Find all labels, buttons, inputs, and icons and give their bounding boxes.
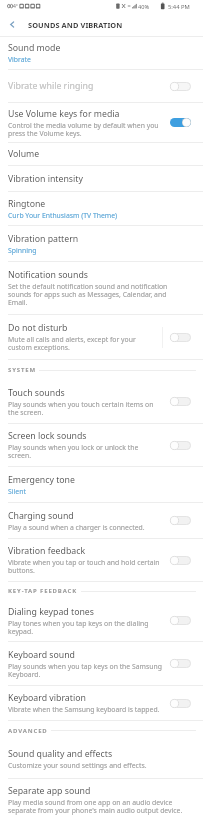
- staticText: Spinning: [8, 246, 37, 255]
- staticText: Sound quality and effects: [8, 748, 113, 760]
- button[interactable]: Toggle Keyboard vibration: [170, 699, 191, 708]
- button[interactable]: Screen lock sounds: [0, 424, 203, 466]
- button[interactable]: Emergency tone: [0, 467, 203, 502]
- staticText: Sound mode: [8, 42, 61, 54]
- staticText: Vibration feedback: [8, 545, 86, 557]
- staticText: Play tones when you tap keys on the dial…: [8, 619, 163, 636]
- button[interactable]: Toggle Vibration feedback: [170, 556, 191, 565]
- button[interactable]: Ringtone: [0, 192, 203, 225]
- staticText: Do not disturb: [8, 322, 68, 334]
- button[interactable]: Back: [0, 13, 24, 36]
- button[interactable]: Charging sound: [0, 503, 203, 538]
- staticText: Curb Your Enthusiasm (TV Theme): [8, 211, 118, 220]
- staticText: Vibrate: [8, 55, 31, 64]
- button[interactable]: Volume: [0, 143, 203, 165]
- button[interactable]: Vibration pattern: [0, 226, 203, 261]
- staticText: Vibration intensity: [8, 173, 83, 185]
- button[interactable]: Keyboard sound: [0, 642, 203, 685]
- button[interactable]: Toggle Use Volume keys for media: [170, 118, 191, 127]
- button[interactable]: Notification sounds: [0, 262, 203, 314]
- staticText: KEY-TAP FEEDBACK: [8, 587, 78, 595]
- staticText: Play sounds when you tap keys on the Sam…: [8, 662, 163, 679]
- staticText: Set the default notification sound and n…: [8, 282, 186, 307]
- button[interactable]: Keyboard vibration: [0, 686, 203, 720]
- staticText: 5:44 PM: [168, 3, 190, 11]
- button[interactable]: Vibration feedback: [0, 539, 203, 581]
- staticText: Volume: [8, 148, 40, 160]
- staticText: Emergency tone: [8, 474, 75, 486]
- staticText: Vibrate when the Samsung keyboard is tap…: [8, 705, 160, 714]
- button[interactable]: Do not disturb: [0, 315, 203, 359]
- staticText: Dialing keypad tones: [8, 606, 94, 618]
- staticText: Keyboard vibration: [8, 692, 86, 704]
- staticText: Touch sounds: [8, 387, 65, 399]
- staticText: Vibrate when you tap or touch and hold c…: [8, 558, 163, 575]
- button[interactable]: Toggle Touch sounds: [170, 397, 191, 406]
- button[interactable]: Use Volume keys for media: [0, 103, 203, 142]
- staticText: Mute all calls and alerts, except for yo…: [8, 335, 153, 352]
- button[interactable]: Separate app sound: [0, 779, 203, 820]
- staticText: Play sounds when you touch certain items…: [8, 400, 163, 417]
- staticText: SOUNDS AND VIBRATION: [28, 20, 123, 30]
- button[interactable]: Sound mode: [0, 37, 203, 69]
- button[interactable]: Toggle Vibrate while ringing: [170, 82, 191, 91]
- button[interactable]: Toggle Screen lock sounds: [170, 441, 191, 450]
- staticText: ADVANCED: [8, 727, 48, 735]
- staticText: 40%: [138, 3, 150, 11]
- staticText: Silent: [8, 487, 26, 496]
- button[interactable]: Sound quality and effects: [0, 740, 203, 778]
- button[interactable]: Toggle Do not disturb: [170, 333, 191, 342]
- button[interactable]: Vibrate while ringing: [0, 70, 203, 102]
- staticText: Charging sound: [8, 510, 74, 522]
- staticText: Separate app sound: [8, 785, 91, 797]
- button[interactable]: Vibration intensity: [0, 166, 203, 191]
- staticText: Ringtone: [8, 198, 46, 210]
- staticText: Play media sound from one app on an audi…: [8, 798, 186, 815]
- staticText: Vibration pattern: [8, 233, 79, 245]
- staticText: Customize your sound settings and effect…: [8, 761, 147, 770]
- staticText: Play sounds when you lock or unlock the …: [8, 443, 163, 460]
- staticText: Vibrate while ringing: [8, 80, 94, 92]
- staticText: Play a sound when a charger is connected…: [8, 523, 145, 532]
- button[interactable]: Toggle Keyboard sound: [170, 659, 191, 668]
- button[interactable]: Toggle Dialing keypad tones: [170, 616, 191, 625]
- button[interactable]: Toggle Charging sound: [170, 516, 191, 525]
- staticText: Use Volume keys for media: [8, 108, 120, 120]
- button[interactable]: Touch sounds: [0, 380, 203, 423]
- staticText: Screen lock sounds: [8, 430, 87, 442]
- staticText: 4°: [13, 3, 19, 10]
- staticText: Control the media volume by default when…: [8, 121, 163, 138]
- staticText: Notification sounds: [8, 269, 89, 281]
- button[interactable]: Dialing keypad tones: [0, 600, 203, 641]
- staticText: Keyboard sound: [8, 649, 75, 661]
- staticText: SYSTEM: [8, 366, 36, 374]
